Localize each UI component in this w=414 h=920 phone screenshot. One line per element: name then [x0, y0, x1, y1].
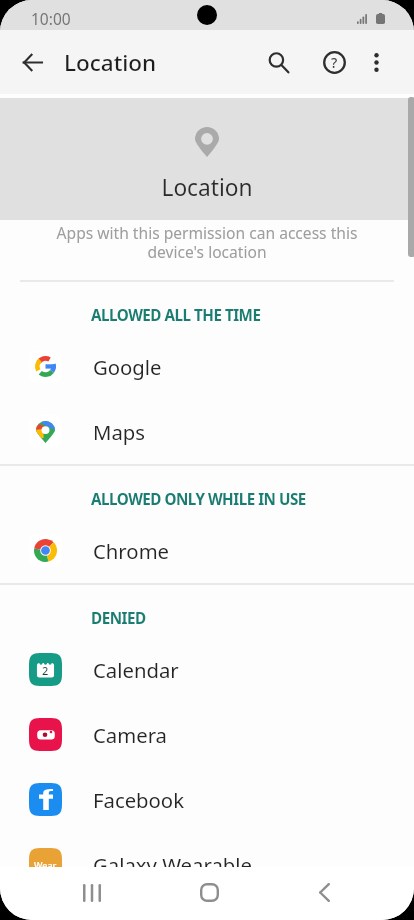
- staticText: Apps with this permission can access thi…: [22, 222, 392, 262]
- staticText: ?: [331, 53, 338, 72]
- button[interactable]: Wear: [0, 832, 414, 897]
- button[interactable]: Maps: [0, 399, 414, 464]
- staticText: 10:00: [31, 8, 71, 29]
- staticText: Facebook: [93, 786, 184, 814]
- staticText: Galaxy Wearable: [93, 851, 252, 879]
- staticText: Calendar: [93, 656, 179, 684]
- button[interactable]: Back: [296, 867, 352, 920]
- staticText: Camera: [93, 721, 168, 749]
- staticText: ALLOWED ONLY WHILE IN USE: [91, 489, 306, 510]
- button[interactable]: More options: [356, 30, 396, 94]
- button[interactable]: Chrome: [0, 518, 414, 583]
- staticText: Location: [0, 172, 414, 203]
- button[interactable]: Google: [0, 334, 414, 399]
- staticText: ALLOWED ALL THE TIME: [91, 305, 261, 326]
- staticText: DENIED: [91, 608, 146, 629]
- staticText: Maps: [93, 418, 146, 446]
- button[interactable]: Camera: [0, 702, 414, 767]
- button[interactable]: 2: [0, 637, 414, 702]
- button[interactable]: Search: [256, 30, 300, 94]
- button[interactable]: Home: [180, 867, 236, 920]
- button[interactable]: Help: [312, 30, 356, 94]
- button[interactable]: Back: [10, 30, 54, 94]
- staticText: 2: [42, 663, 49, 678]
- staticText: Location: [64, 47, 157, 78]
- button[interactable]: Recents: [64, 867, 120, 920]
- button[interactable]: Facebook: [0, 767, 414, 832]
- staticText: Google: [93, 353, 162, 381]
- staticText: Chrome: [93, 537, 170, 565]
- staticText: Wear: [34, 859, 57, 871]
